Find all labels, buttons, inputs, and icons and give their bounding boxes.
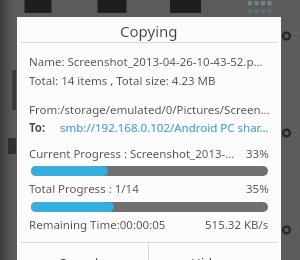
staticText: 33% (246, 146, 269, 162)
staticText: Current Progress : Screenshot_2013-… (29, 146, 235, 162)
staticText: Cancel (58, 254, 99, 260)
staticText: Remaining Time:00:00:05 (29, 217, 166, 233)
staticText: 515.32 KB/s (205, 217, 269, 233)
staticText: From:/storage/emulated/0/Pictures/Screen… (29, 102, 270, 118)
staticText: To: (29, 120, 46, 136)
button[interactable]: Hide (149, 243, 281, 260)
staticText: Name: Screenshot_2013-04-26-10-43-52.p… (29, 54, 263, 70)
staticText: smb://192.168.0.102/Android PC shar… (60, 120, 269, 136)
staticText: 35% (246, 181, 269, 197)
staticText: Total Progress : 1/14 (29, 181, 139, 197)
staticText: Hide (191, 254, 220, 260)
staticText: Total: 14 items , Total size: 4.23 MB (29, 73, 216, 89)
staticText: Copying (120, 21, 178, 41)
button[interactable]: Cancel (17, 243, 148, 260)
